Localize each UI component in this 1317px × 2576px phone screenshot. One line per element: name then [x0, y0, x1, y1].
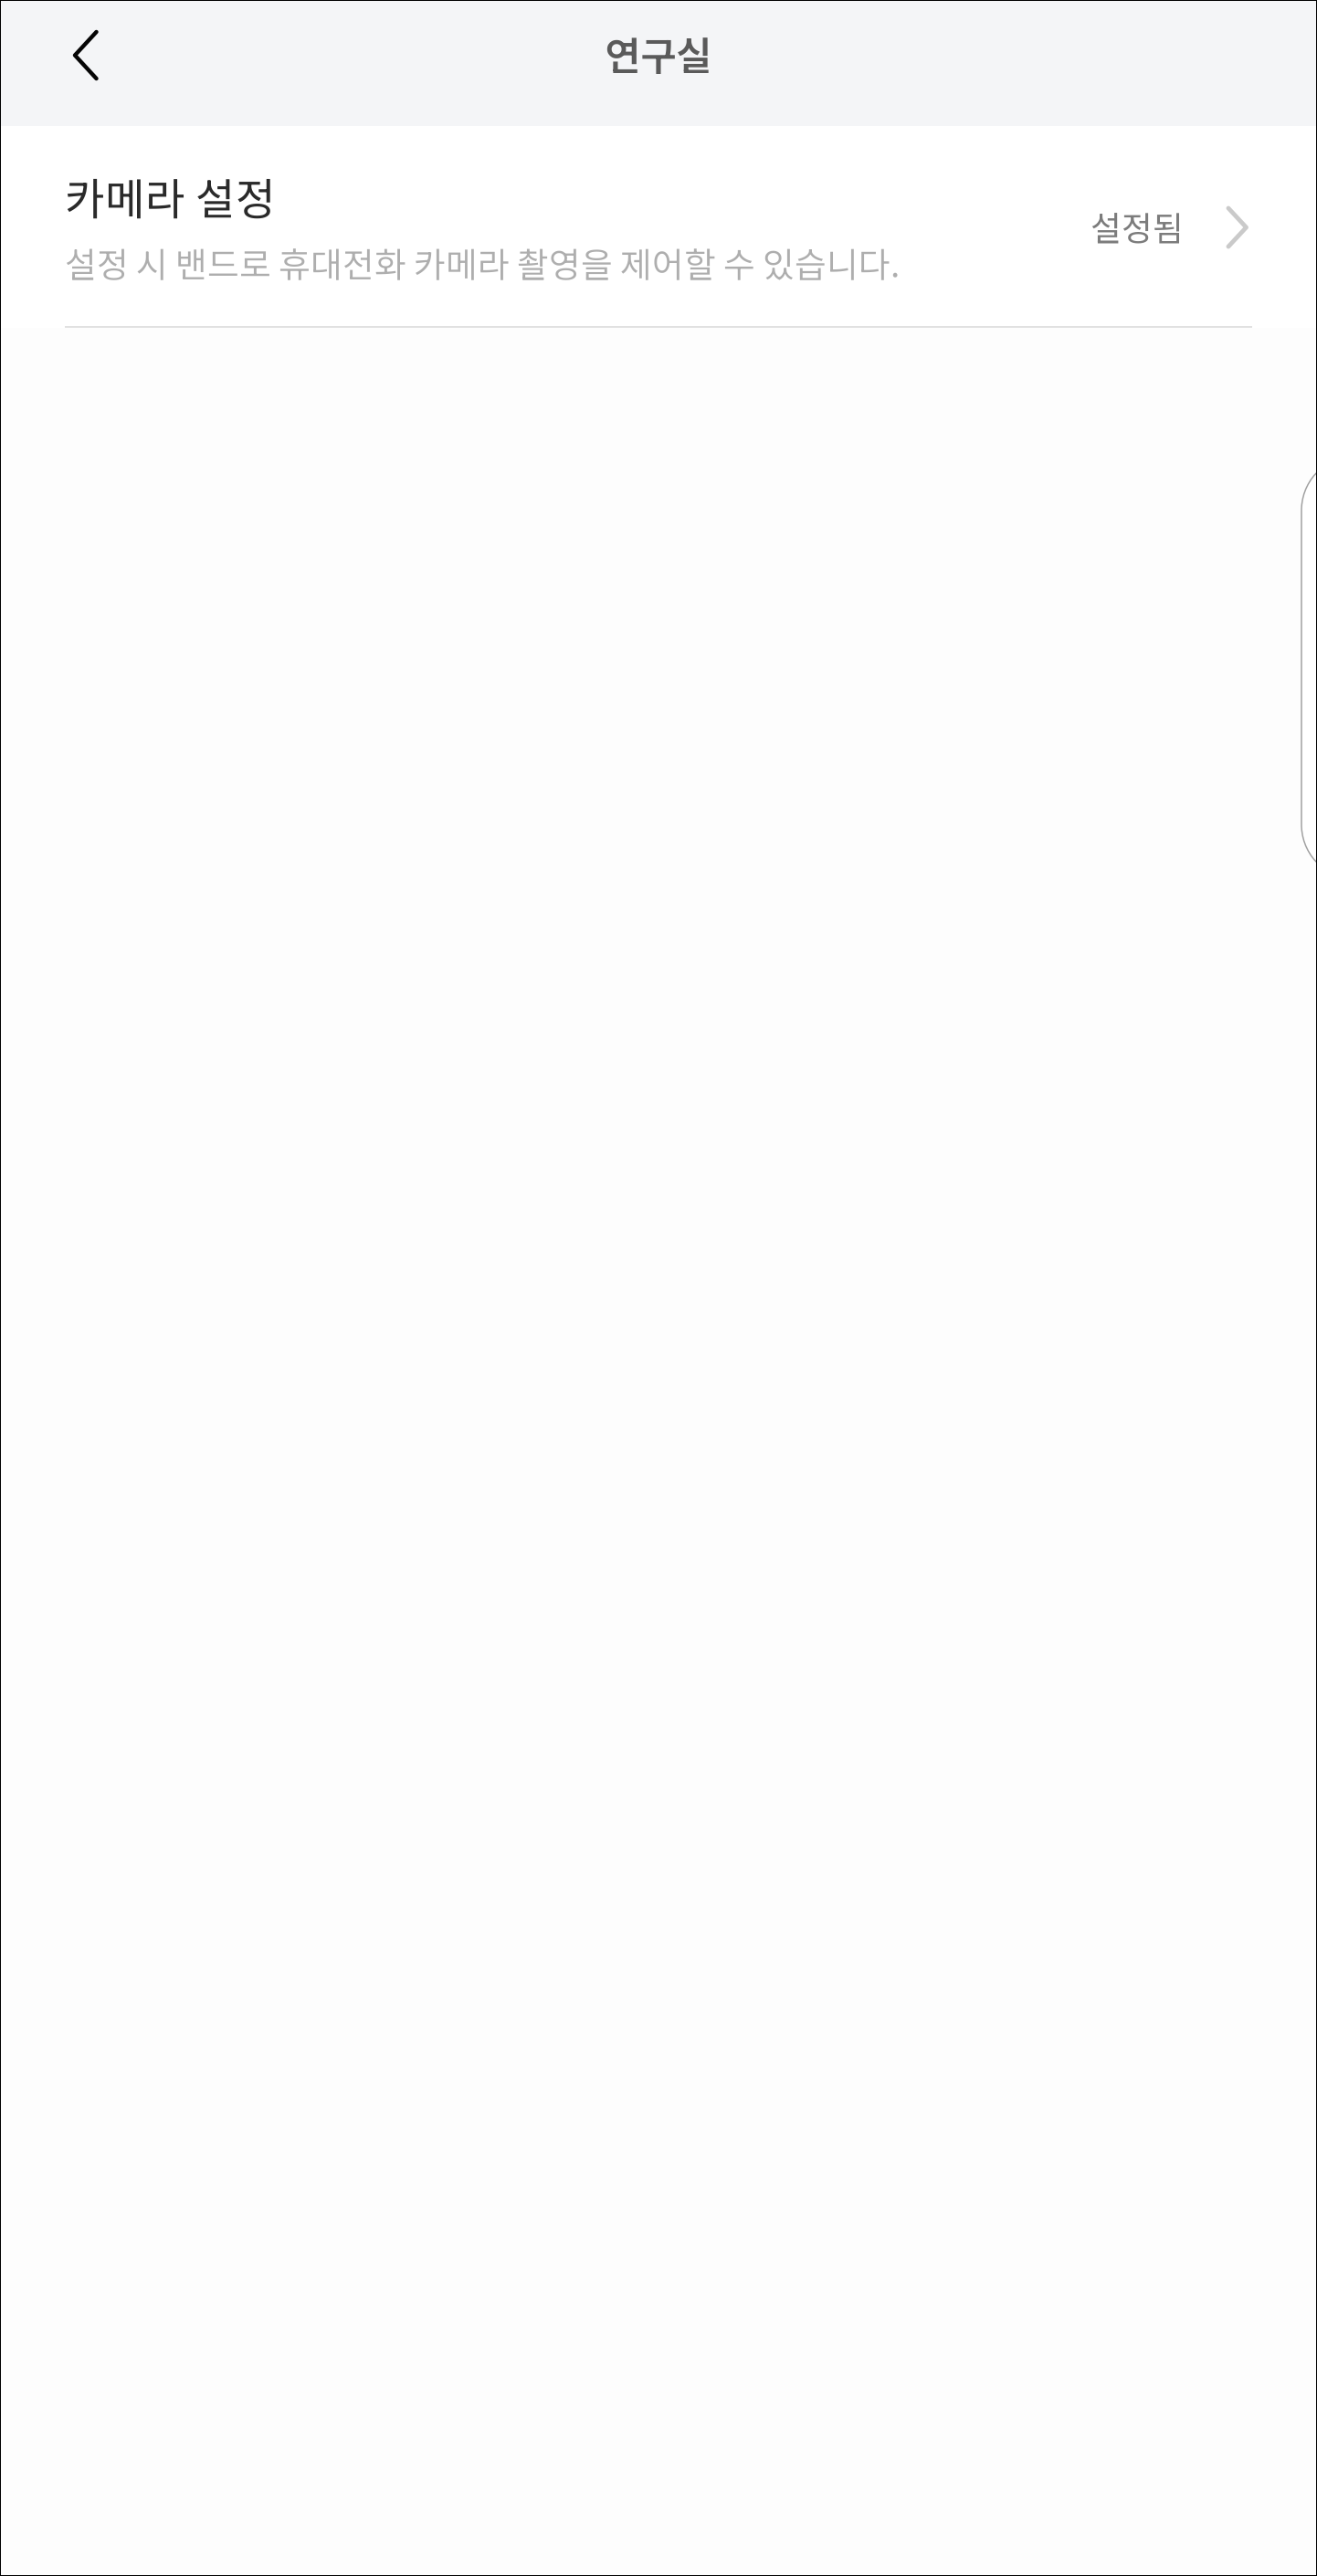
staticText: 설정 시 밴드로 휴대전화 카메라 촬영을 제어할 수 있습니다.	[65, 237, 900, 287]
button[interactable]: 카메라 설정	[0, 126, 1317, 326]
staticText: 연구실	[605, 25, 712, 82]
staticText: 카메라 설정	[65, 165, 276, 227]
button[interactable]: 뒤로	[0, 0, 172, 107]
staticText: 설정됨	[1090, 202, 1184, 250]
